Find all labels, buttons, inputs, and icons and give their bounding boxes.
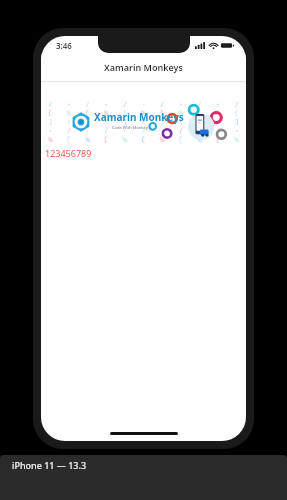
staticText: 123456789 (45, 147, 92, 159)
button[interactable]: Xamarin Monkeys banner (41, 100, 246, 144)
staticText: Code With Monkey (112, 125, 148, 130)
staticText: iPhone 11 — 13.3 (12, 459, 87, 471)
staticText: Xamarin Monkeys (104, 61, 183, 73)
staticText: 3:46 (56, 40, 72, 51)
button[interactable]: iPhone 11 — 13.3 (0, 455, 287, 500)
staticText: Xamarin Monkeys (94, 110, 184, 124)
